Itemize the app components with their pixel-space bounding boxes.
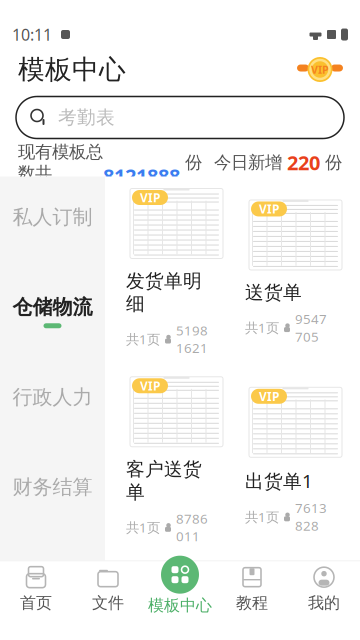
button[interactable]: 首页 bbox=[0, 561, 72, 617]
staticText: 教程 bbox=[236, 593, 268, 613]
staticText: 今日新增 bbox=[214, 152, 282, 173]
staticText: VIP bbox=[259, 388, 279, 404]
button[interactable]: VIP bbox=[245, 563, 346, 640]
button[interactable]: 模板中心 bbox=[144, 554, 216, 616]
staticText: 模板中心 bbox=[18, 53, 126, 86]
button[interactable]: 我的 bbox=[288, 561, 360, 617]
button[interactable]: 行政人力 bbox=[0, 356, 105, 446]
staticText: 8121888 bbox=[103, 136, 185, 189]
staticText: 客户送货单 bbox=[126, 458, 202, 504]
staticText: 送货单 bbox=[245, 281, 302, 304]
staticText: 220 bbox=[282, 149, 325, 176]
button[interactable]: VIP bbox=[245, 385, 346, 534]
button[interactable]: 私人订制 bbox=[0, 176, 105, 266]
staticText: 8786011 bbox=[176, 510, 208, 545]
staticText: 发货单明细 bbox=[126, 269, 202, 315]
button[interactable]: 文件 bbox=[72, 561, 144, 617]
staticText: VIP bbox=[140, 189, 160, 205]
staticText: VIP bbox=[311, 62, 329, 77]
staticText: 份 bbox=[185, 152, 202, 173]
staticText: 共1页 bbox=[245, 319, 279, 336]
button[interactable]: 教程 bbox=[216, 561, 288, 617]
staticText: 共1页 bbox=[126, 330, 160, 348]
staticText: VIP bbox=[259, 566, 279, 582]
staticText: VIP bbox=[259, 201, 279, 217]
button[interactable]: VIP 会员 bbox=[298, 54, 342, 84]
staticText: 现有模板总数共 bbox=[18, 141, 103, 184]
staticText: 财务结算 bbox=[12, 475, 92, 499]
staticText: 首页 bbox=[20, 593, 52, 613]
staticText: 我的 bbox=[308, 593, 340, 613]
button[interactable]: 财务结算 bbox=[0, 446, 105, 536]
staticText: 仓储物流 bbox=[12, 295, 92, 319]
button[interactable]: VIP bbox=[126, 375, 227, 545]
staticText: 模板中心 bbox=[148, 596, 212, 615]
staticText: 7613828 bbox=[295, 499, 327, 534]
button[interactable]: VIP bbox=[245, 198, 346, 345]
staticText: 出货单1 bbox=[245, 468, 313, 493]
staticText: 共1页 bbox=[126, 518, 160, 536]
staticText: VIP bbox=[140, 378, 160, 394]
staticText: 行政人力 bbox=[12, 385, 92, 409]
button[interactable]: 考勤表 bbox=[16, 96, 344, 138]
button[interactable]: VIP bbox=[126, 564, 227, 640]
staticText: 私人订制 bbox=[12, 205, 92, 229]
staticText: 考勤表 bbox=[58, 106, 115, 129]
staticText: 共1页 bbox=[245, 508, 279, 526]
staticText: 51981621 bbox=[176, 321, 208, 357]
staticText: 份 bbox=[325, 152, 342, 173]
staticText: 文件 bbox=[92, 593, 124, 613]
staticText: 10:11 bbox=[12, 24, 52, 45]
button[interactable]: VIP bbox=[126, 186, 227, 357]
button[interactable]: 仓储物流 bbox=[0, 266, 105, 356]
staticText: 9547705 bbox=[295, 310, 327, 345]
